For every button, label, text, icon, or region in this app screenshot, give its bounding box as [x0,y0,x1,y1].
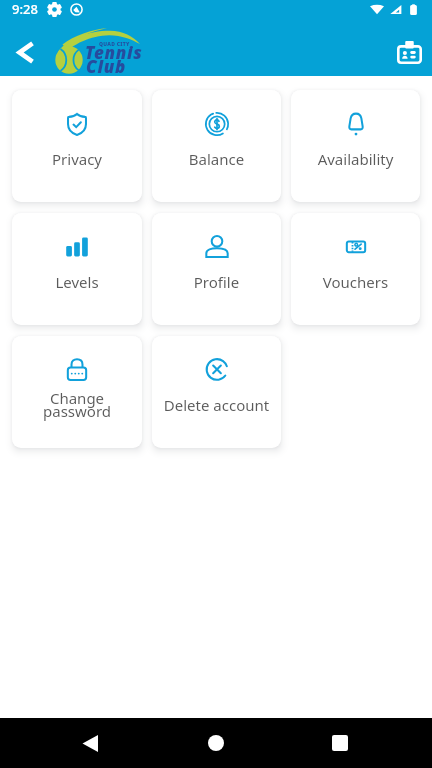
button[interactable]: Back [8,34,44,70]
button[interactable]: Recents [318,721,362,765]
button[interactable]: Membership card [391,34,427,70]
staticText: Levels [12,272,142,292]
staticText: Availability [291,149,420,169]
staticText: Tennis [85,41,143,64]
staticText: 9:28 [12,0,38,18]
button[interactable]: Levels [12,213,142,325]
button[interactable]: Privacy [12,90,142,202]
button[interactable]: Back [68,721,112,765]
button[interactable]: Change password [12,336,142,448]
staticText: Profile [152,272,281,292]
button[interactable]: Availability [291,90,420,202]
staticText: Balance [152,149,281,169]
button[interactable]: Delete account [152,336,281,448]
button[interactable]: Profile [152,213,281,325]
button[interactable]: Balance [152,90,281,202]
staticText: Change password [12,388,142,422]
button[interactable]: Vouchers [291,213,420,325]
button[interactable]: Home [194,721,238,765]
staticText: QUAD CITY [99,41,130,48]
staticText: Club [86,55,126,78]
staticText: Privacy [12,149,142,169]
staticText: Delete account [152,395,281,415]
staticText: Vouchers [291,272,420,292]
